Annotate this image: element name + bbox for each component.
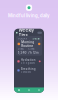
- staticText: Breathing: [21, 67, 36, 71]
- button[interactable]: Home: [14, 87, 24, 93]
- staticText: 6 of 8 glasses: [21, 62, 35, 64]
- staticText: Mindful living, daily: [8, 13, 50, 18]
- staticText: See all: [32, 37, 40, 40]
- button[interactable]: Profile: [34, 87, 44, 93]
- button[interactable]: Plan: [24, 87, 34, 93]
- button[interactable]: Breathing: [16, 66, 42, 74]
- button[interactable]: Filter: [37, 32, 42, 34]
- staticText: 8,240: [18, 51, 27, 54]
- staticText: Steps: [18, 48, 24, 50]
- staticText: TODAY: [18, 37, 28, 40]
- staticText: 2 sessions: [21, 71, 31, 73]
- staticText: Hydration: [21, 58, 36, 62]
- staticText: Sleep: [28, 48, 34, 50]
- button[interactable]: TODAY: [16, 36, 42, 56]
- staticText: Weekly Tips: [18, 28, 34, 38]
- button[interactable]: Hydration: [16, 57, 42, 65]
- staticText: 7h 12m: [28, 51, 39, 54]
- staticText: Morning Routine: [21, 40, 34, 48]
